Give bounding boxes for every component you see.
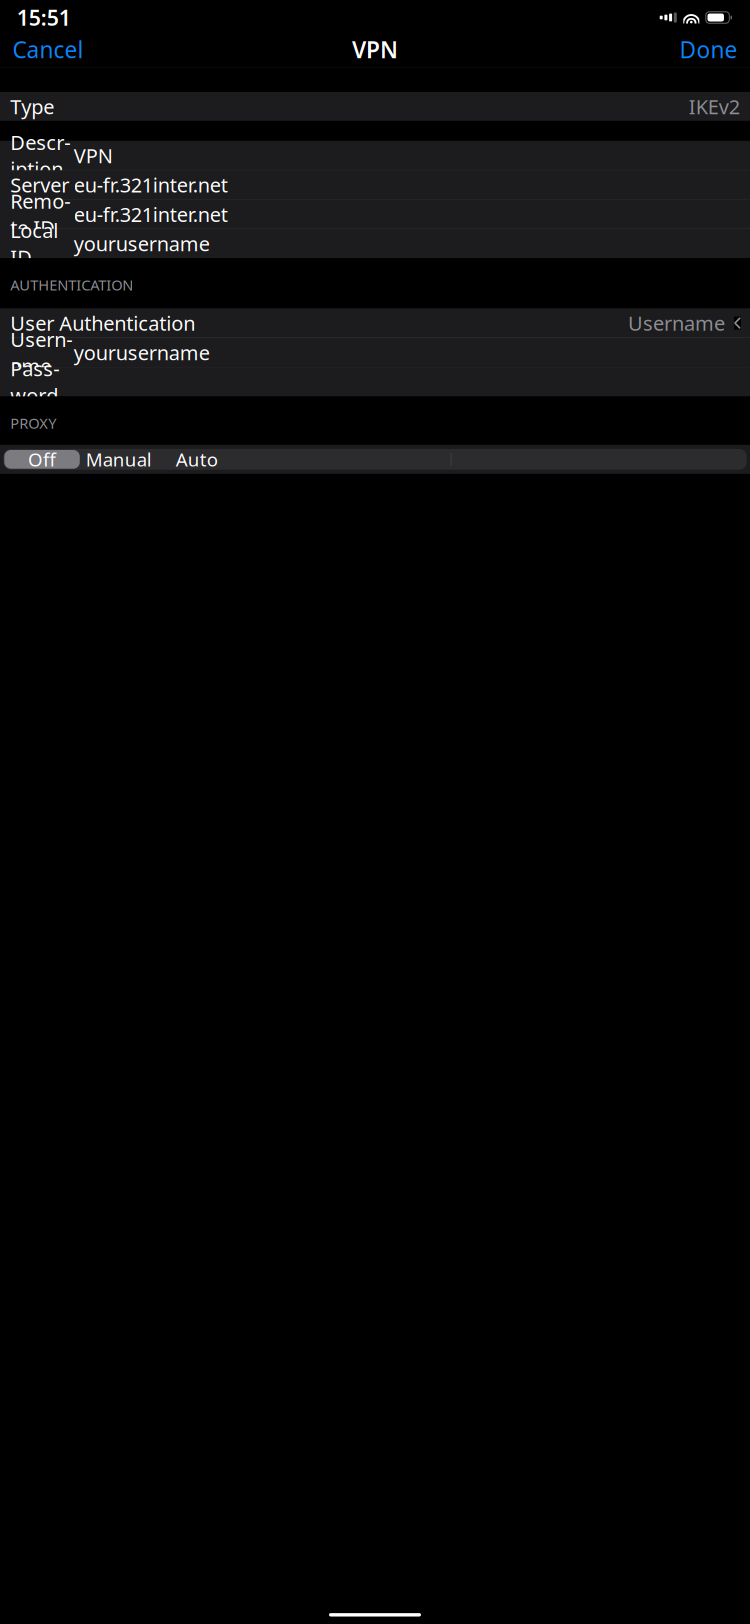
staticText: 15:51	[17, 3, 71, 32]
staticText: yourusername	[74, 230, 210, 257]
staticText: Password	[10, 355, 59, 408]
button[interactable]: User Authentication	[0, 309, 750, 338]
staticText: Type	[10, 93, 54, 120]
staticText: IKEv2	[689, 93, 740, 120]
button[interactable]: Local ID	[0, 229, 750, 258]
staticText: Remote ID	[10, 188, 70, 241]
button[interactable]: Username	[0, 338, 750, 367]
staticText: Username	[10, 326, 72, 379]
staticText: AUTHENTICATION	[10, 275, 133, 295]
staticText: yourusername	[74, 339, 210, 366]
staticText: Server	[10, 171, 69, 198]
staticText: VPN	[74, 142, 113, 169]
staticText: Auto	[176, 447, 218, 472]
staticText: Off	[28, 447, 56, 472]
staticText: Local ID	[10, 217, 58, 270]
staticText: VPN	[352, 34, 398, 64]
staticText: User Authentication	[10, 310, 195, 336]
button[interactable]: Password	[0, 367, 750, 396]
staticText: PROXY	[10, 413, 56, 433]
button[interactable]: Done	[667, 28, 749, 70]
button[interactable]: Cancel	[0, 28, 95, 70]
staticText: Manual	[86, 447, 152, 472]
button[interactable]: Off	[0, 445, 750, 474]
staticText: Description	[10, 129, 70, 182]
staticText: eu-fr.321inter.net	[74, 201, 228, 227]
staticText: eu-fr.321inter.net	[74, 171, 228, 198]
staticText: Done	[679, 34, 737, 64]
button[interactable]: Description	[0, 141, 750, 170]
staticText: Username	[628, 310, 725, 336]
staticText: Cancel	[12, 34, 83, 64]
button[interactable]: Server	[0, 170, 750, 199]
button[interactable]: Remote ID	[0, 200, 750, 229]
button[interactable]: Type	[0, 92, 750, 121]
